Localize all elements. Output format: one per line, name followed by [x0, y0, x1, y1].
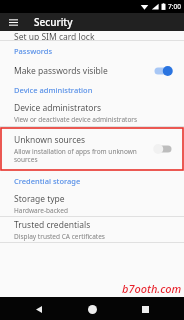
button[interactable]: Open navigation menu: [6, 15, 20, 29]
staticText: Credential storage: [14, 176, 81, 186]
staticText: Passwords: [14, 46, 53, 56]
staticText: Make passwords visible: [14, 65, 108, 77]
staticText: Allow installation of apps from unknown …: [14, 147, 146, 164]
button[interactable]: Set up SIM card lock: [0, 31, 184, 40]
staticText: Display trusted CA certificates: [14, 232, 105, 241]
button[interactable]: Unknown sources: [0, 127, 184, 171]
button[interactable]: Home: [84, 301, 100, 317]
button[interactable]: Back: [32, 302, 46, 316]
staticText: Hardware-backed: [14, 206, 68, 215]
button[interactable]: Unknown sources: [150, 140, 176, 158]
button[interactable]: Make passwords visible: [0, 61, 184, 80]
staticText: Trusted credentials: [14, 219, 91, 231]
staticText: Unknown sources: [14, 134, 86, 146]
button[interactable]: Device administrators: [0, 100, 184, 126]
staticText: Security: [34, 15, 73, 29]
staticText: Device administration: [14, 85, 93, 95]
staticText: 7:00: [168, 2, 181, 11]
button[interactable]: Make passwords visible: [150, 62, 176, 80]
staticText: b7ooth.com: [122, 281, 182, 296]
staticText: Storage type: [14, 193, 65, 205]
staticText: Set up SIM card lock: [14, 31, 95, 40]
button[interactable]: Storage type: [0, 191, 184, 216]
staticText: View or deactivate device administrators: [14, 115, 138, 124]
staticText: Device administrators: [14, 102, 102, 114]
button[interactable]: Recent apps: [138, 302, 152, 316]
button[interactable]: Trusted credentials: [0, 217, 184, 242]
